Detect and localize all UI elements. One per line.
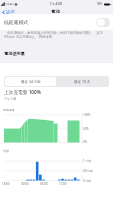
staticText: 18:00 bbox=[2, 182, 10, 186]
staticText: 中華電信 bbox=[5, 3, 14, 6]
staticText: 下午 1:44 bbox=[4, 97, 17, 101]
staticText: 1 小時 bbox=[83, 159, 92, 163]
staticText: 50% bbox=[83, 127, 89, 131]
staticText: 電池使用量 bbox=[4, 51, 25, 56]
staticText: 00:00 bbox=[21, 182, 29, 186]
staticText: 0 分鐘 bbox=[83, 179, 92, 183]
staticText: 最近 10 天 bbox=[74, 79, 91, 84]
staticText: 「低耗電模式」會暫時減少背景活動（例如下載和郵件擷取），直到 iPhone 可以… bbox=[4, 30, 106, 39]
staticText: 30 分鐘 bbox=[83, 169, 93, 173]
button[interactable]: 設定 bbox=[0, 9, 17, 15]
button[interactable]: 最近 10 天 bbox=[56, 77, 108, 86]
staticText: 06:00 bbox=[40, 182, 48, 186]
staticText: 12:00 bbox=[59, 182, 67, 186]
staticText: 電池 bbox=[51, 9, 60, 15]
staticText: 0% bbox=[83, 140, 88, 144]
button[interactable]: 低耗電模式 bbox=[0, 14, 113, 30]
staticText: 上次充電量 100% bbox=[4, 89, 41, 95]
staticText: 低耗電模式 bbox=[4, 19, 28, 25]
staticText: 100% bbox=[83, 113, 91, 117]
staticText: 電池電量 bbox=[3, 108, 15, 112]
staticText: 活動 bbox=[3, 149, 9, 153]
staticText: 設定 bbox=[6, 9, 15, 15]
staticText: 下午4:08 bbox=[49, 2, 62, 6]
staticText: 最近 24 小時 bbox=[21, 79, 41, 84]
staticText: 98% bbox=[97, 2, 103, 6]
button[interactable]: 最近 24 小時 bbox=[5, 77, 56, 86]
